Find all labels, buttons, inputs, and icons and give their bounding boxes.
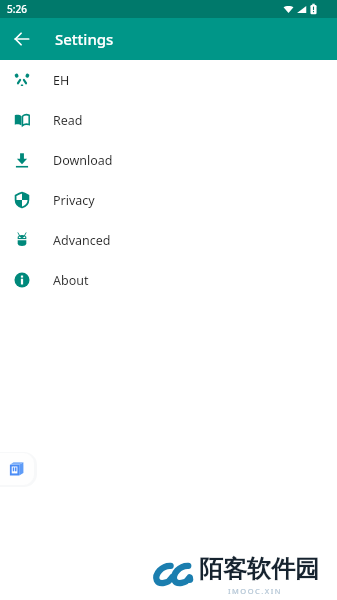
- button[interactable]: Download: [0, 140, 337, 180]
- staticText: Privacy: [53, 192, 95, 209]
- staticText: Settings: [55, 29, 114, 49]
- staticText: 陌客软件园: [199, 554, 319, 584]
- staticText: EH: [53, 72, 70, 89]
- staticText: Download: [53, 152, 113, 169]
- staticText: Advanced: [53, 232, 111, 249]
- button[interactable]: EH: [0, 60, 337, 100]
- button[interactable]: Floating assistant: [0, 452, 40, 488]
- staticText: 5:26: [7, 2, 27, 16]
- button[interactable]: Read: [0, 100, 337, 140]
- button[interactable]: Privacy: [0, 180, 337, 220]
- staticText: About: [53, 272, 89, 289]
- button[interactable]: About: [0, 260, 337, 300]
- staticText: Read: [53, 112, 83, 129]
- button[interactable]: Advanced: [0, 220, 337, 260]
- staticText: IMOOC.XIN: [228, 586, 282, 596]
- button[interactable]: Back: [8, 25, 36, 53]
